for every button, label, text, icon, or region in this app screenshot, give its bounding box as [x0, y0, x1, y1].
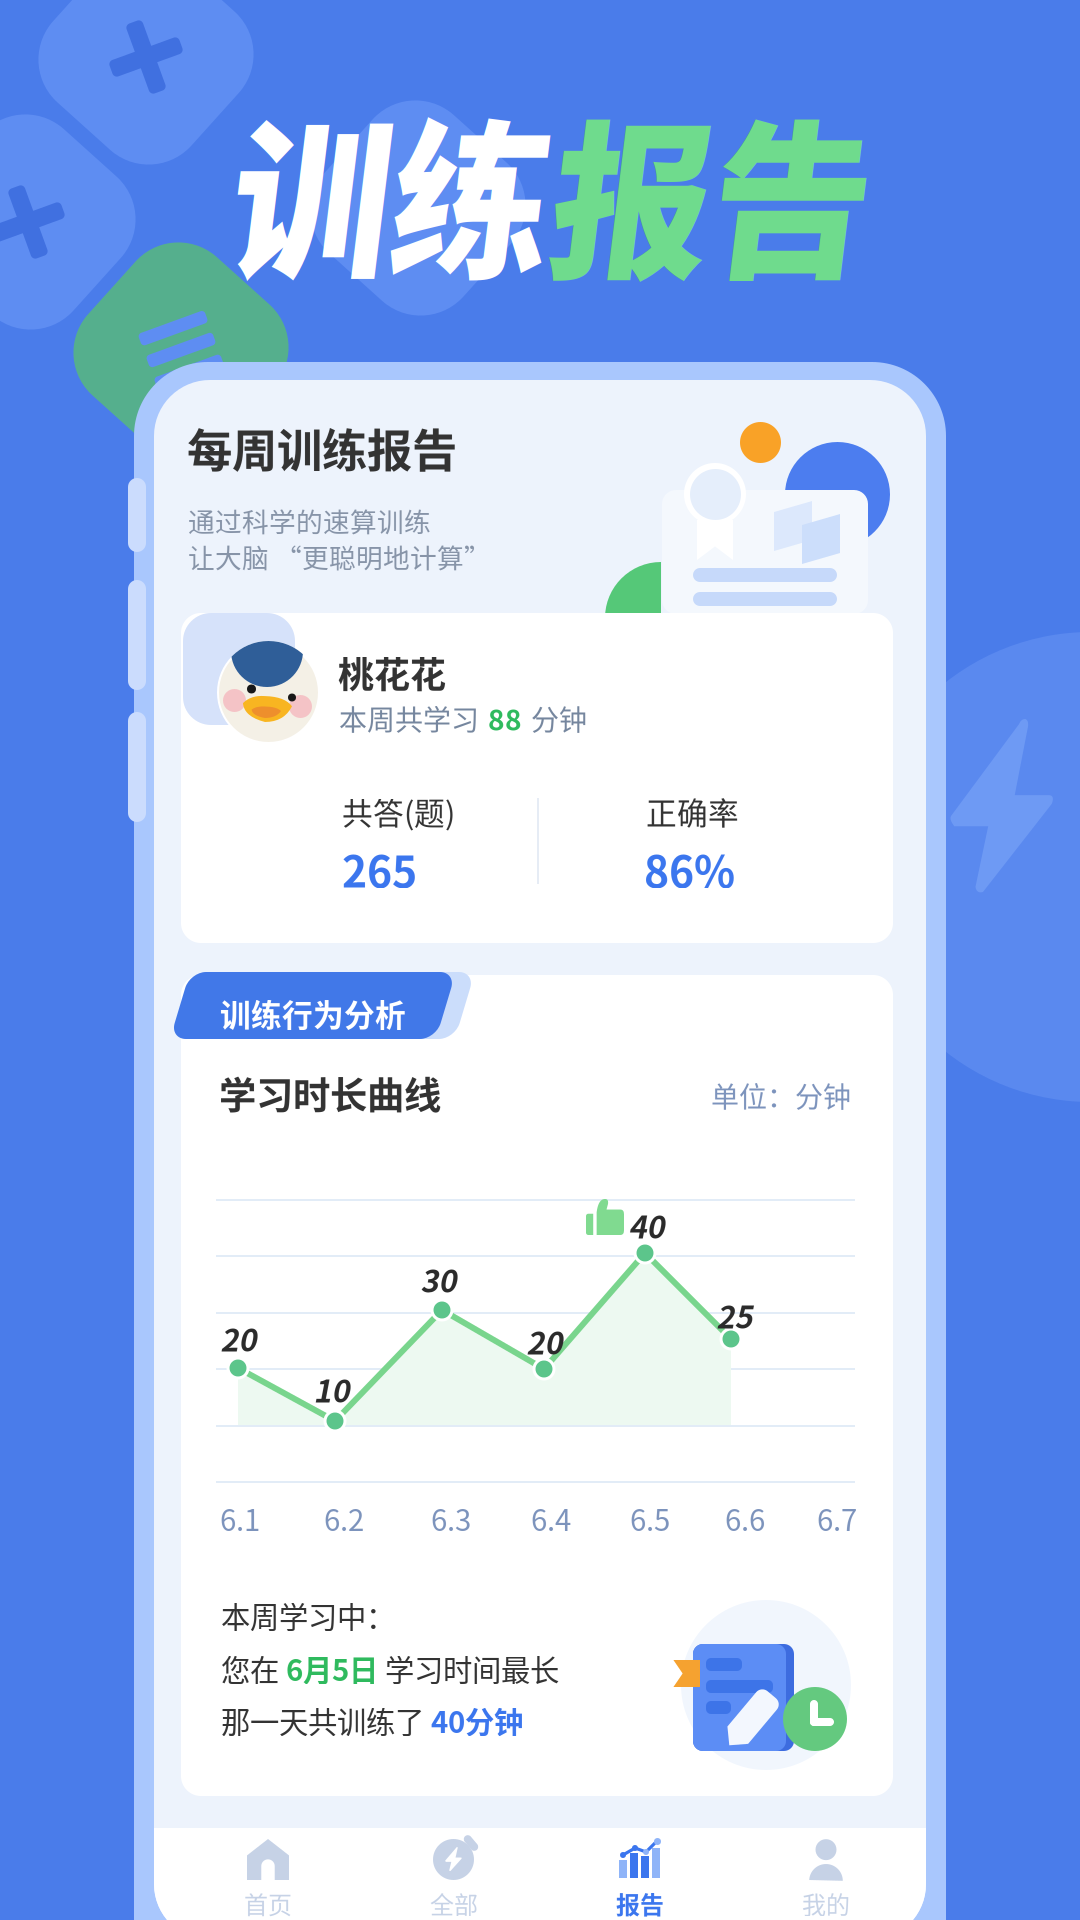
staticText: 学习时间最长	[378, 1647, 559, 1689]
staticText: 6.5	[630, 1497, 670, 1539]
staticText: 训练	[227, 68, 547, 300]
staticText: 6.2	[324, 1497, 364, 1539]
staticText: 20	[526, 1319, 562, 1363]
staticText: 报告	[547, 68, 867, 300]
staticText: 每周训练报告	[187, 415, 457, 481]
staticText: 共答(题)	[342, 789, 455, 833]
staticText: 86%	[644, 838, 735, 900]
staticText: 通过科学的速算训练	[188, 501, 431, 540]
staticText: 您在	[221, 1647, 286, 1689]
staticText: 单位：分钟	[711, 1075, 851, 1115]
staticText: 全部	[430, 1886, 478, 1920]
staticText: 本周学习中：	[221, 1594, 395, 1636]
staticText: 6.4	[531, 1497, 571, 1539]
staticText: 6.7	[817, 1497, 857, 1539]
staticText: 10	[313, 1367, 349, 1411]
staticText: 训练行为分析	[220, 991, 406, 1035]
button[interactable]: 首页	[175, 1828, 361, 1920]
staticText: 40	[628, 1203, 664, 1247]
staticText: 6.1	[220, 1497, 260, 1539]
staticText: 本周共学习	[339, 698, 479, 738]
button[interactable]: 我的	[733, 1828, 919, 1920]
staticText: 那一天共训练了	[221, 1699, 431, 1741]
staticText: 让大脑 “更聪明地计算”	[188, 537, 491, 576]
staticText: 学习时长曲线	[219, 1066, 441, 1120]
staticText: 首页	[244, 1886, 292, 1920]
staticText: 30	[420, 1257, 456, 1301]
staticText: 20	[220, 1316, 256, 1360]
staticText: 265	[342, 838, 417, 900]
staticText: 88	[488, 698, 522, 738]
staticText: 6月5日	[286, 1647, 378, 1689]
staticText: 40分钟	[431, 1699, 523, 1741]
staticText: 桃花花	[338, 646, 446, 698]
button[interactable]: 全部	[361, 1828, 547, 1920]
staticText: 分钟	[531, 698, 587, 738]
staticText: 正确率	[646, 789, 739, 833]
staticText: 6.3	[431, 1497, 471, 1539]
staticText: 我的	[802, 1886, 850, 1920]
button[interactable]: 报告	[547, 1828, 733, 1920]
staticText: 报告	[616, 1886, 664, 1920]
staticText: 25	[716, 1293, 752, 1337]
staticText: 6.6	[725, 1497, 765, 1539]
